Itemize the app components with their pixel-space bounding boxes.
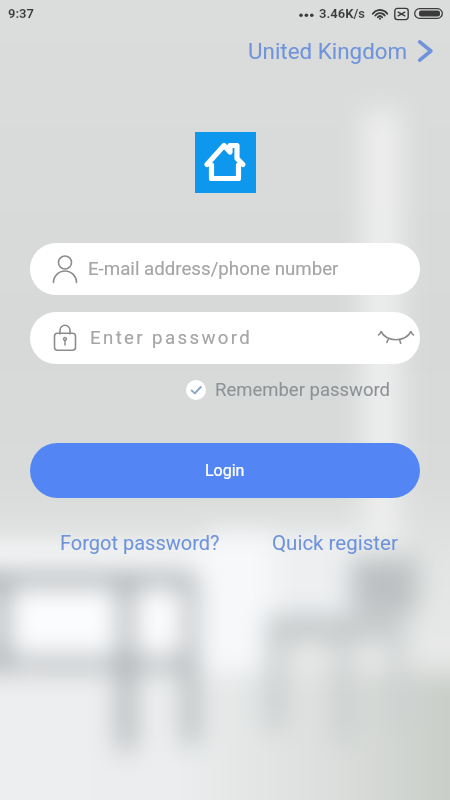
button[interactable]: Quick register [266, 525, 404, 561]
staticText: Forgot password? [60, 531, 220, 554]
staticText: Login [205, 461, 245, 480]
button[interactable]: E-mail address/phone number [30, 243, 420, 295]
staticText: Enter password [90, 327, 253, 349]
staticText: E-mail address/phone number [88, 258, 339, 280]
button[interactable]: App logo [195, 132, 256, 193]
staticText: Quick register [272, 531, 398, 555]
staticText: 3.46K/s [319, 6, 365, 21]
button[interactable]: Remember password [186, 377, 391, 402]
button[interactable]: Show password [374, 312, 418, 364]
button[interactable]: Login [30, 443, 420, 498]
button[interactable]: Forgot password? [54, 525, 226, 560]
button[interactable]: United Kingdom [246, 36, 434, 66]
staticText: United Kingdom [248, 38, 408, 64]
staticText: Remember password [215, 379, 391, 401]
button[interactable]: Enter password [30, 312, 420, 364]
staticText: 9:37 [8, 6, 35, 21]
